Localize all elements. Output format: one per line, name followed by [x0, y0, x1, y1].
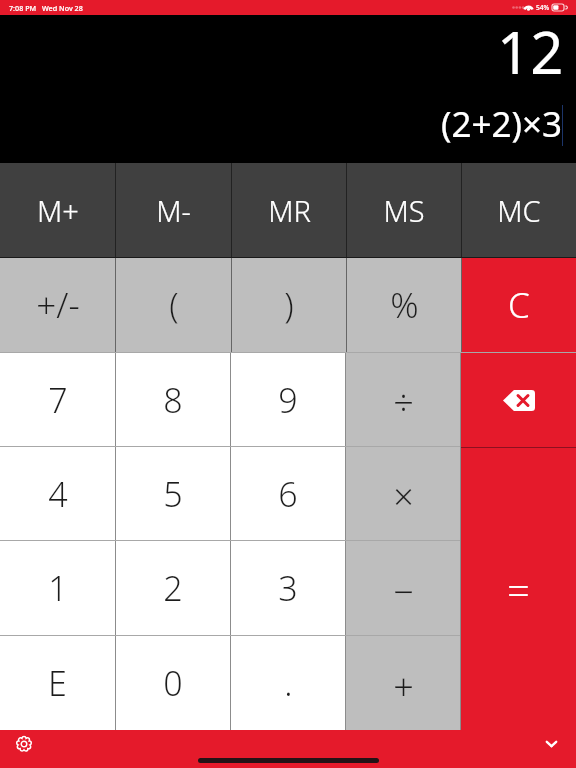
staticText: Wed Nov 28 — [42, 3, 83, 13]
staticText: +/- — [36, 281, 80, 329]
button[interactable]: . — [231, 636, 345, 730]
button[interactable]: % — [347, 258, 461, 352]
staticText: M+ — [37, 191, 79, 230]
button[interactable]: 9 — [231, 353, 345, 446]
button[interactable]: Collapse — [540, 733, 562, 755]
button[interactable]: M+ — [0, 163, 115, 257]
staticText: MS — [383, 191, 425, 230]
staticText: ) — [284, 282, 294, 328]
button[interactable]: − — [346, 541, 460, 635]
button[interactable]: 4 — [0, 447, 115, 540]
staticText: 3 — [278, 565, 298, 611]
button[interactable]: ) — [232, 258, 346, 352]
staticText: 7:08 PM — [9, 3, 37, 13]
button[interactable]: + — [346, 636, 460, 730]
staticText: ÷ — [393, 378, 414, 427]
staticText: MC — [497, 191, 541, 230]
staticText: × — [393, 472, 414, 521]
button[interactable]: Backspace — [461, 353, 576, 447]
staticText: M- — [156, 191, 191, 230]
button[interactable]: 3 — [231, 541, 345, 635]
staticText: − — [393, 567, 414, 616]
staticText: = — [507, 562, 530, 616]
button[interactable]: 8 — [116, 353, 230, 446]
staticText: 9 — [278, 377, 298, 423]
staticText: ( — [169, 282, 179, 328]
staticText: + — [393, 662, 414, 711]
staticText: 5 — [163, 471, 183, 517]
staticText: 4 — [48, 471, 68, 517]
button[interactable]: ÷ — [346, 353, 460, 446]
button[interactable]: × — [346, 447, 460, 540]
staticText: 7 — [48, 377, 68, 423]
staticText: 6 — [278, 471, 298, 517]
staticText: 54% — [536, 3, 550, 12]
button[interactable]: MS — [347, 163, 461, 257]
button[interactable]: 2 — [116, 541, 230, 635]
button[interactable]: MR — [232, 163, 346, 257]
staticText: 2 — [163, 565, 183, 611]
button[interactable]: = — [461, 448, 576, 730]
staticText: (2+2)×3 — [441, 100, 563, 148]
button[interactable]: Settings — [12, 732, 36, 756]
button[interactable]: 1 — [0, 541, 115, 635]
button[interactable]: 6 — [231, 447, 345, 540]
staticText: . — [284, 660, 293, 706]
staticText: MR — [268, 191, 311, 230]
button[interactable]: 0 — [116, 636, 230, 730]
staticText: E — [48, 660, 67, 706]
button[interactable]: E — [0, 636, 115, 730]
button[interactable]: 5 — [116, 447, 230, 540]
button[interactable]: ( — [116, 258, 231, 352]
button[interactable]: 7 — [0, 353, 115, 446]
button[interactable]: +/- — [0, 258, 115, 352]
staticText: % — [390, 281, 419, 329]
button[interactable]: C — [462, 258, 576, 352]
staticText: 8 — [163, 377, 183, 423]
button[interactable]: M- — [116, 163, 231, 257]
staticText: 1 — [48, 565, 68, 611]
button[interactable]: MC — [462, 163, 576, 257]
staticText: 0 — [163, 660, 183, 706]
staticText: 12 — [497, 12, 564, 91]
staticText: C — [508, 281, 530, 329]
